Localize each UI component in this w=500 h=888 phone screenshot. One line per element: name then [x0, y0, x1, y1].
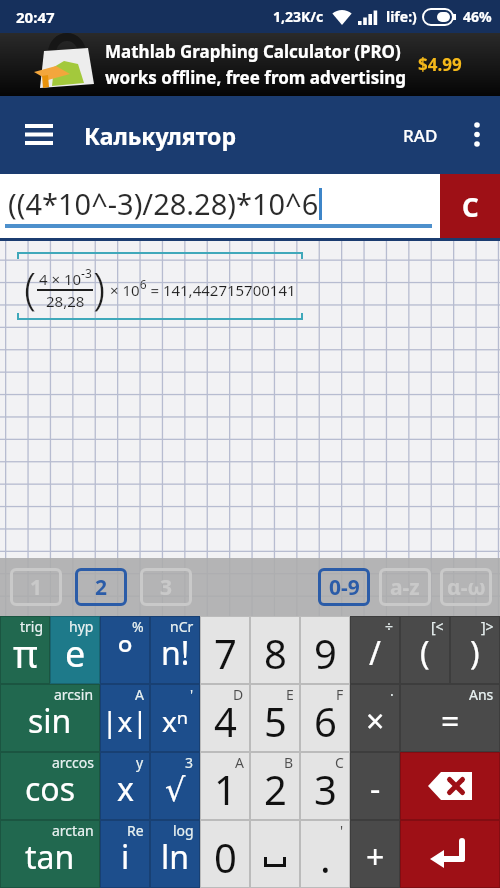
button[interactable]: 3	[140, 568, 192, 606]
staticText: B	[284, 753, 294, 772]
button[interactable]: arcsin	[0, 684, 100, 752]
button[interactable]: ÷	[350, 616, 400, 684]
staticText: 4 × 10-3	[39, 265, 92, 289]
staticText: )	[93, 258, 106, 318]
staticText: 2	[95, 573, 108, 602]
button[interactable]: 3	[150, 752, 200, 820]
button[interactable]: α-ω	[440, 568, 492, 606]
button[interactable]	[400, 820, 500, 888]
button[interactable]: 8	[250, 616, 300, 684]
staticText: 3	[314, 762, 337, 816]
staticText: (	[420, 631, 430, 675]
staticText: 5	[264, 694, 287, 748]
button[interactable]: [<	[400, 616, 450, 684]
button[interactable]: C	[300, 752, 350, 820]
button[interactable]: A	[100, 684, 150, 752]
staticText: ·	[390, 685, 394, 704]
button[interactable]: F	[300, 684, 350, 752]
staticText: RAD	[403, 124, 438, 147]
button[interactable]: 0-9	[318, 568, 370, 606]
staticText: (	[24, 258, 37, 318]
staticText: 1	[214, 762, 237, 816]
staticText: $4.99	[418, 53, 462, 76]
staticText: °	[117, 627, 134, 679]
button[interactable]: '	[300, 820, 350, 888]
staticText: 4	[214, 694, 237, 748]
staticText: sin	[28, 699, 72, 743]
button[interactable]: %	[100, 616, 150, 684]
staticText: arctan	[52, 821, 94, 840]
button[interactable]: log	[150, 820, 200, 888]
button[interactable]: ·	[350, 684, 400, 752]
button[interactable]: A	[200, 752, 250, 820]
button[interactable]: C	[440, 174, 500, 238]
staticText: arccos	[52, 753, 94, 772]
button[interactable]: ((4*10^-3)/28.28)*10^6	[0, 174, 500, 238]
button[interactable]	[400, 752, 500, 820]
button[interactable]: '	[150, 684, 200, 752]
staticText: xⁿ	[162, 702, 189, 740]
staticText: tan	[25, 835, 75, 879]
staticText: trig	[20, 617, 44, 636]
button[interactable]: hyp	[50, 616, 100, 684]
staticText: E	[286, 685, 294, 704]
staticText: -	[370, 767, 381, 811]
staticText: √	[165, 771, 186, 808]
button[interactable]: 9	[300, 616, 350, 684]
staticText: =	[441, 699, 460, 743]
button[interactable]: ]>	[450, 616, 500, 684]
button[interactable]: Ans	[400, 684, 500, 752]
staticText: F	[336, 685, 344, 704]
staticText: '	[190, 685, 194, 704]
button[interactable]: E	[250, 684, 300, 752]
staticText: +	[366, 835, 385, 879]
staticText: 0	[214, 830, 237, 884]
staticText: C	[335, 753, 344, 772]
staticText: ×	[366, 699, 385, 743]
staticText: arcsin	[54, 685, 94, 704]
staticText: 3	[185, 753, 194, 772]
staticText: 7	[214, 626, 237, 680]
staticText: A	[235, 753, 244, 772]
staticText: 3	[160, 573, 173, 602]
staticText: nCr	[170, 617, 194, 636]
staticText: hyp	[69, 617, 94, 636]
button[interactable]: a-z	[379, 568, 431, 606]
button[interactable]: -	[350, 752, 400, 820]
button[interactable]	[474, 122, 480, 148]
button[interactable]: 2	[75, 568, 127, 606]
staticText: n!	[161, 631, 190, 675]
button[interactable]	[250, 820, 300, 888]
button[interactable]	[25, 124, 53, 146]
button[interactable]: 0	[200, 820, 250, 888]
button[interactable]: Re	[100, 820, 150, 888]
button[interactable]: y	[100, 752, 150, 820]
button[interactable]: arctan	[0, 820, 100, 888]
staticText: log	[173, 821, 194, 840]
staticText: 6	[314, 694, 337, 748]
staticText: x	[117, 767, 134, 811]
staticText: 1,23K/c	[273, 7, 324, 26]
staticText: i	[121, 835, 130, 879]
staticText: α-ω	[447, 573, 486, 602]
staticText: cos	[25, 767, 76, 811]
button[interactable]: B	[250, 752, 300, 820]
button[interactable]: Mathlab Graphing Calculator (PRO)	[0, 33, 500, 96]
staticText: ]>	[481, 617, 494, 636]
button[interactable]: 7	[200, 616, 250, 684]
button[interactable]: +	[350, 820, 400, 888]
staticText: 2	[264, 762, 287, 816]
staticText: .	[320, 830, 331, 884]
staticText: Mathlab Graphing Calculator (PRO)	[105, 40, 401, 63]
button[interactable]: nCr	[150, 616, 200, 684]
staticText: [<	[431, 617, 444, 636]
staticText: 0-9	[329, 573, 360, 602]
staticText: ln	[161, 835, 190, 879]
staticText: 8	[264, 626, 287, 680]
button[interactable]: arccos	[0, 752, 100, 820]
button[interactable]: 1	[10, 568, 62, 606]
button[interactable]: D	[200, 684, 250, 752]
button[interactable]: RAD	[403, 124, 438, 147]
button[interactable]: trig	[0, 616, 50, 684]
staticText: /	[369, 631, 381, 675]
